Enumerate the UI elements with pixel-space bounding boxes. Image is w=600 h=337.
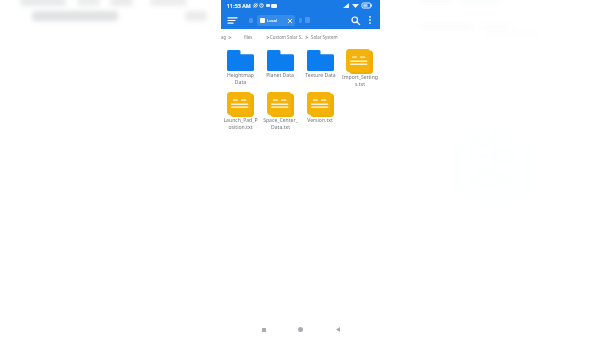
button[interactable]: Import_Setting s.txt xyxy=(340,47,379,89)
button[interactable]: Version.txt xyxy=(300,90,340,125)
staticText: Space_Center_ Data.txt xyxy=(263,117,298,131)
button[interactable]: More options xyxy=(364,14,376,26)
staticText: Custom Solar S.. xyxy=(270,34,304,40)
staticText: Launch_Pad_P osition.txt xyxy=(223,117,258,131)
button[interactable]: Heightmap Data xyxy=(221,47,260,87)
button[interactable]: Back xyxy=(331,323,344,336)
staticText: Version.txt xyxy=(307,117,333,124)
button[interactable]: Planet Data xyxy=(260,47,300,80)
button[interactable]: Texture Data xyxy=(300,47,340,80)
staticText: Solar System xyxy=(311,34,338,40)
staticText: Texture Data xyxy=(305,72,336,79)
button[interactable]: Launch_Pad_P osition.txt xyxy=(221,90,260,132)
button[interactable]: Home xyxy=(294,323,307,336)
staticText: files xyxy=(244,34,253,40)
button[interactable]: Search xyxy=(348,13,362,27)
staticText: 11:53 AM xyxy=(227,2,251,9)
button[interactable]: Navigation menu xyxy=(225,13,239,27)
staticText: Local xyxy=(267,18,278,24)
button[interactable]: Recent apps xyxy=(257,323,270,336)
staticText: Heightmap Data xyxy=(227,72,254,86)
staticText: ag xyxy=(221,34,227,40)
staticText: Planet Data xyxy=(266,72,294,79)
button[interactable]: Space_Center_ Data.txt xyxy=(260,90,300,132)
button[interactable]: Local xyxy=(257,15,295,26)
staticText: Import_Setting s.txt xyxy=(342,74,378,88)
